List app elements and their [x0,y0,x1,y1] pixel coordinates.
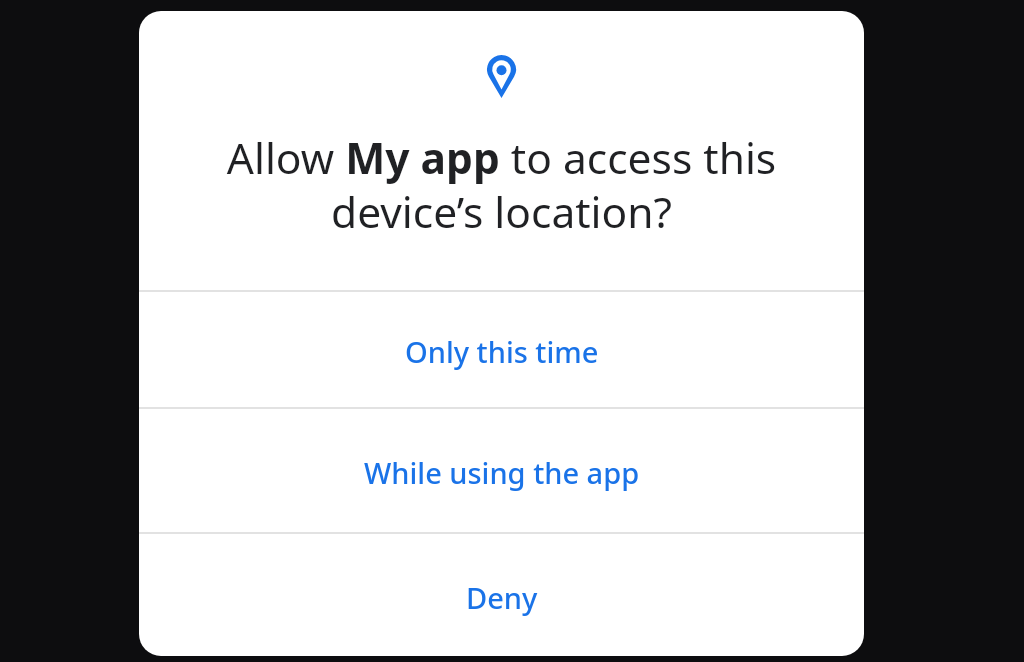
button[interactable]: Only this time [139,292,864,407]
staticText: While using the app [364,453,640,492]
button[interactable]: Deny [139,534,864,656]
staticText: Allow My app to access this device’s loc… [139,129,864,240]
staticText: Deny [466,578,538,617]
staticText: Only this time [405,332,599,371]
button[interactable]: While using the app [139,409,864,532]
